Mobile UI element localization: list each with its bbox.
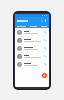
button[interactable]: More options [44, 19, 47, 22]
button[interactable]: New message [42, 73, 47, 78]
button[interactable]: Call [15, 36, 49, 44]
button[interactable]: Call [15, 52, 49, 60]
button[interactable]: Call [43, 38, 47, 42]
button[interactable]: Call [43, 62, 47, 66]
button[interactable]: Call [43, 46, 47, 50]
button[interactable] [41, 24, 47, 28]
button[interactable] [17, 24, 26, 28]
button[interactable] [30, 24, 37, 28]
button[interactable]: Search [40, 19, 43, 22]
button[interactable]: Call [15, 44, 49, 52]
button[interactable]: Call [43, 30, 47, 34]
button[interactable]: Call [15, 28, 49, 36]
button[interactable]: Call [43, 54, 47, 58]
button[interactable]: Call [15, 60, 49, 68]
